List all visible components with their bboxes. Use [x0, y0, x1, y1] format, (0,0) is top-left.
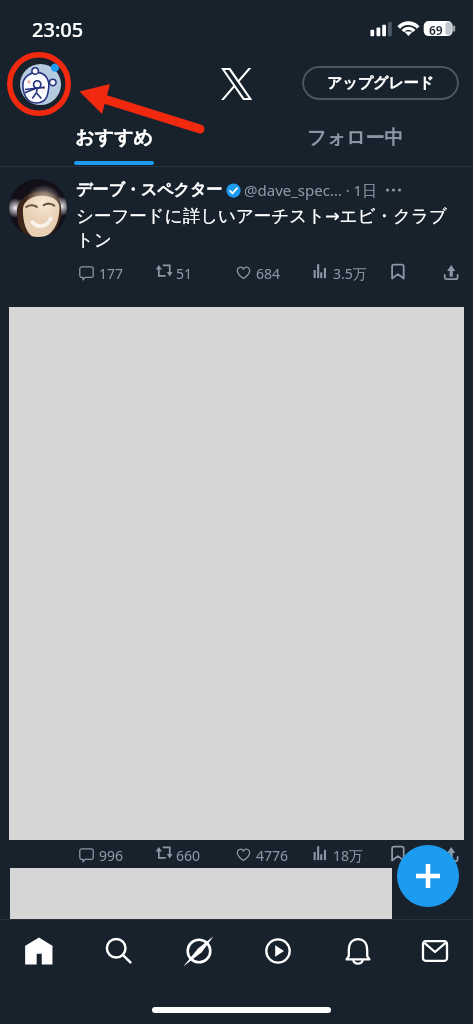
staticText: アップグレード — [327, 74, 435, 93]
button[interactable]: Search — [86, 921, 152, 978]
button[interactable]: Video — [245, 921, 311, 978]
button[interactable]: 684 — [235, 264, 281, 281]
button[interactable]: 3.5万 — [312, 264, 367, 281]
staticText: おすすめ — [75, 126, 153, 150]
staticText: 660 — [176, 846, 201, 863]
staticText: 684 — [256, 264, 281, 281]
button[interactable]: 177 — [78, 264, 124, 281]
staticText: デーブ・スペクター — [76, 180, 223, 200]
staticText: フォロー中 — [307, 126, 404, 150]
button[interactable]: 51 — [155, 264, 193, 281]
staticText: 51 — [176, 264, 193, 281]
staticText: シーフードに詳しいアーチスト→エビ・クラブトン — [76, 205, 454, 251]
staticText: 996 — [99, 846, 124, 863]
button[interactable]: Post — [397, 845, 459, 907]
staticText: @dave_spec… · 1日 — [244, 180, 378, 200]
button[interactable]: フォロー中 — [237, 112, 473, 166]
button[interactable]: 4776 — [235, 846, 289, 863]
button[interactable]: Messages — [402, 921, 468, 978]
staticText: 177 — [99, 264, 124, 281]
staticText: 69 — [429, 22, 443, 38]
button[interactable]: Grok — [166, 921, 232, 978]
button[interactable]: 18万 — [312, 846, 364, 863]
button[interactable]: Notifications — [325, 921, 391, 978]
button[interactable]: Account — [20, 64, 61, 105]
staticText: 3.5万 — [333, 264, 367, 281]
button[interactable]: Share — [444, 847, 461, 864]
button[interactable]: おすすめ — [0, 112, 237, 166]
button[interactable]: Home — [6, 921, 72, 978]
button[interactable]: 996 — [78, 846, 124, 863]
button[interactable]: Bookmark — [391, 263, 408, 280]
button[interactable]: 660 — [155, 846, 201, 863]
staticText: 4776 — [256, 846, 289, 863]
staticText: 18万 — [333, 846, 364, 863]
button[interactable]: Share — [444, 265, 461, 282]
button[interactable]: アップグレード — [302, 66, 459, 100]
staticText: 23:05 — [32, 16, 84, 43]
button[interactable]: Profile photo — [9, 179, 67, 237]
button[interactable]: Bookmark — [391, 845, 408, 862]
